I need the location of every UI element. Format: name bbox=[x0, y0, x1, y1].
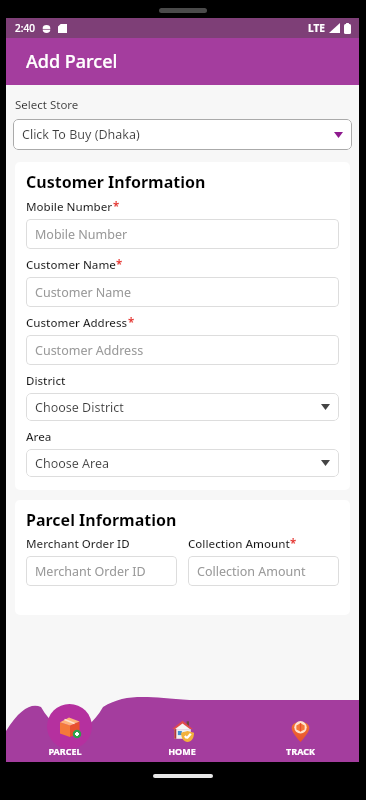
staticText: Merchant Order ID bbox=[35, 563, 146, 580]
staticText: Customer Name bbox=[35, 284, 132, 301]
button[interactable]: Merchant Order ID bbox=[26, 556, 177, 586]
staticText: Area bbox=[26, 429, 52, 445]
button[interactable]: Add Parcel bbox=[47, 704, 92, 749]
button[interactable]: Choose Area bbox=[26, 449, 339, 477]
button[interactable]: HOME bbox=[123, 704, 241, 762]
staticText: Collection Amount bbox=[188, 536, 290, 552]
button[interactable]: PARCEL bbox=[6, 704, 123, 762]
staticText: HOME bbox=[168, 745, 196, 757]
button[interactable]: TRACK bbox=[241, 704, 359, 762]
staticText: * bbox=[116, 257, 123, 273]
button[interactable]: Choose District bbox=[26, 393, 339, 421]
button[interactable]: Collection Amount bbox=[188, 556, 339, 586]
staticText: * bbox=[128, 315, 135, 331]
staticText: Add Parcel bbox=[26, 49, 118, 74]
staticText: Choose Area bbox=[35, 455, 110, 472]
staticText: Customer Information bbox=[26, 171, 206, 193]
button[interactable]: Mobile Number bbox=[26, 219, 339, 249]
button[interactable]: Customer Name bbox=[26, 277, 339, 307]
staticText: * bbox=[290, 536, 297, 552]
staticText: Choose District bbox=[35, 399, 124, 416]
button[interactable]: Customer Address bbox=[26, 335, 339, 365]
staticText: Mobile Number bbox=[35, 226, 128, 243]
staticText: District bbox=[26, 373, 66, 389]
staticText: Merchant Order ID bbox=[26, 536, 130, 552]
staticText: Customer Address bbox=[35, 342, 144, 359]
staticText: Click To Buy (Dhaka) bbox=[22, 126, 140, 143]
staticText: LTE bbox=[308, 21, 325, 35]
staticText: Collection Amount bbox=[197, 563, 306, 580]
staticText: Select Store bbox=[15, 97, 79, 113]
staticText: 2:40 bbox=[15, 21, 35, 35]
button[interactable]: Click To Buy (Dhaka) bbox=[13, 119, 352, 150]
staticText: Parcel Information bbox=[26, 509, 177, 531]
staticText: Customer Address bbox=[26, 315, 128, 331]
staticText: Customer Name bbox=[26, 257, 116, 273]
staticText: Mobile Number bbox=[26, 199, 113, 215]
staticText: * bbox=[113, 199, 120, 215]
staticText: TRACK bbox=[286, 745, 315, 757]
staticText: PARCEL bbox=[48, 745, 82, 757]
